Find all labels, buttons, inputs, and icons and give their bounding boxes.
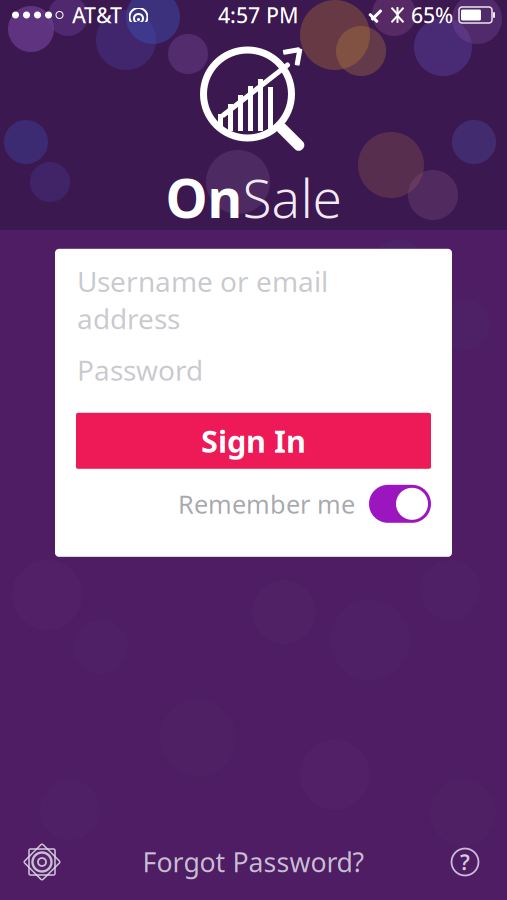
staticText: Sign In — [201, 420, 306, 461]
button[interactable]: Remember me — [369, 485, 431, 523]
button[interactable]: Forgot Password? — [126, 836, 380, 888]
staticText: Username or email address — [77, 263, 328, 337]
staticText: ? — [460, 848, 470, 876]
button[interactable]: Password — [55, 335, 452, 405]
staticText: On — [165, 162, 242, 233]
staticText: Forgot Password? — [142, 844, 364, 880]
button[interactable]: Username or email address — [55, 265, 452, 335]
staticText: Remember me — [178, 487, 355, 521]
button[interactable]: Help — [443, 840, 487, 884]
staticText: AT&T — [72, 1, 122, 29]
staticText: Password — [77, 351, 203, 388]
button[interactable]: Sign In — [76, 413, 431, 469]
button[interactable]: Settings — [20, 840, 64, 884]
staticText: 4:57 PM — [218, 1, 299, 29]
staticText: 65% — [411, 1, 453, 29]
staticText: Sale — [242, 162, 341, 233]
